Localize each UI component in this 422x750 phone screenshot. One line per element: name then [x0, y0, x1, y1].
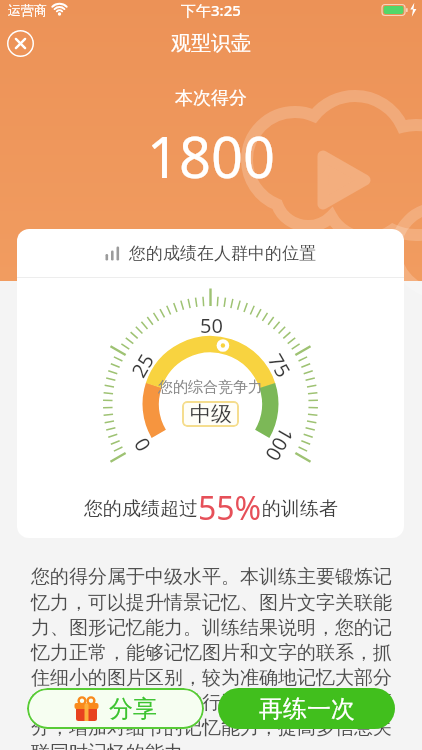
button[interactable]	[7, 30, 34, 57]
staticText: 您的综合竞争力	[17, 378, 404, 397]
staticText: 分享	[109, 694, 157, 724]
staticText: 0	[127, 433, 157, 456]
staticText: 您的成绩在人群中的位置	[129, 243, 316, 264]
staticText: 运营商	[8, 2, 47, 18]
staticText: 55%	[198, 486, 262, 530]
staticText: 您的成绩超过	[84, 497, 198, 521]
staticText: 中级	[190, 401, 232, 427]
staticText: 50	[200, 312, 223, 339]
staticText: 25	[125, 349, 160, 382]
staticText: 下午3:25	[181, 0, 241, 20]
staticText: 观型识壶	[0, 31, 422, 56]
staticText: 75	[262, 349, 297, 382]
button[interactable]: 分享	[27, 688, 204, 729]
staticText: 1800	[0, 118, 422, 194]
staticText: 您的得分属于中级水平。本训练主要锻炼记 忆力，可以提升情景记忆、图片文字关联能 …	[31, 565, 392, 750]
staticText: 再练一次	[259, 694, 355, 724]
staticText: 本次得分	[0, 87, 422, 110]
staticText: 100	[259, 423, 300, 466]
button[interactable]: 再练一次	[218, 688, 395, 729]
staticText: 的训练者	[262, 497, 338, 521]
